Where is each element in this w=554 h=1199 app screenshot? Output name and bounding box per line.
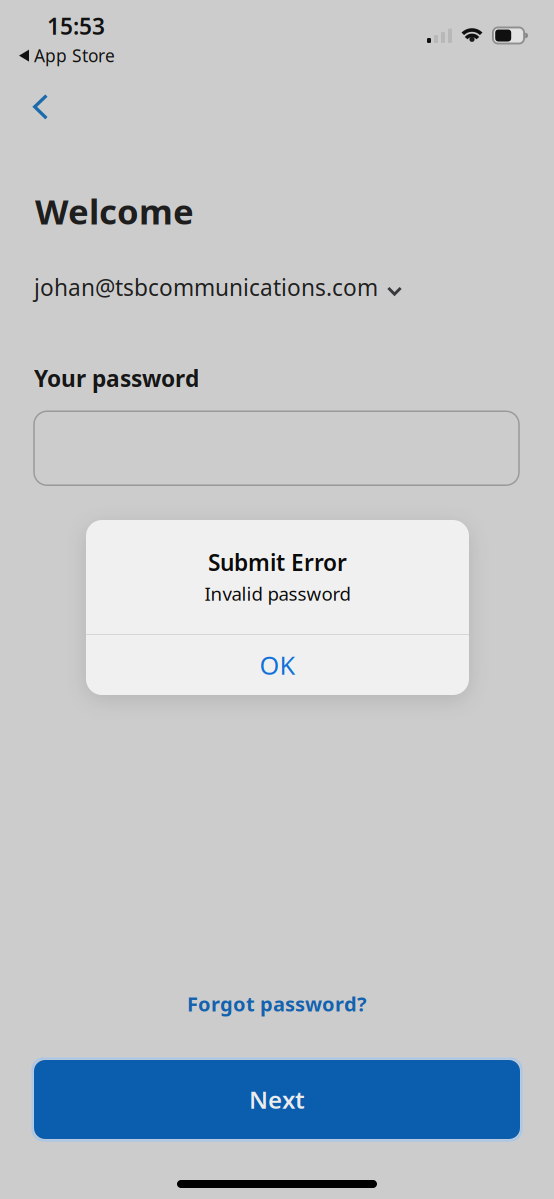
staticText: 15:53 [47, 11, 105, 41]
staticText: Invalid password [204, 581, 350, 606]
staticText: Welcome [35, 188, 194, 234]
staticText: johan@tsbcommunications.com [34, 272, 378, 302]
button[interactable]: johan@tsbcommunications.com [0, 234, 402, 308]
staticText: Submit Error [208, 547, 347, 577]
button[interactable]: Next [34, 1060, 520, 1139]
staticText: Next [249, 1084, 305, 1115]
button[interactable]: OK [86, 635, 469, 695]
button[interactable]: Forgot password? [0, 984, 554, 1034]
button[interactable]: Back [0, 81, 68, 133]
staticText: OK [259, 648, 295, 682]
staticText: App Store [34, 44, 115, 67]
staticText: Forgot password? [187, 990, 367, 1017]
staticText: Your password [34, 363, 199, 393]
